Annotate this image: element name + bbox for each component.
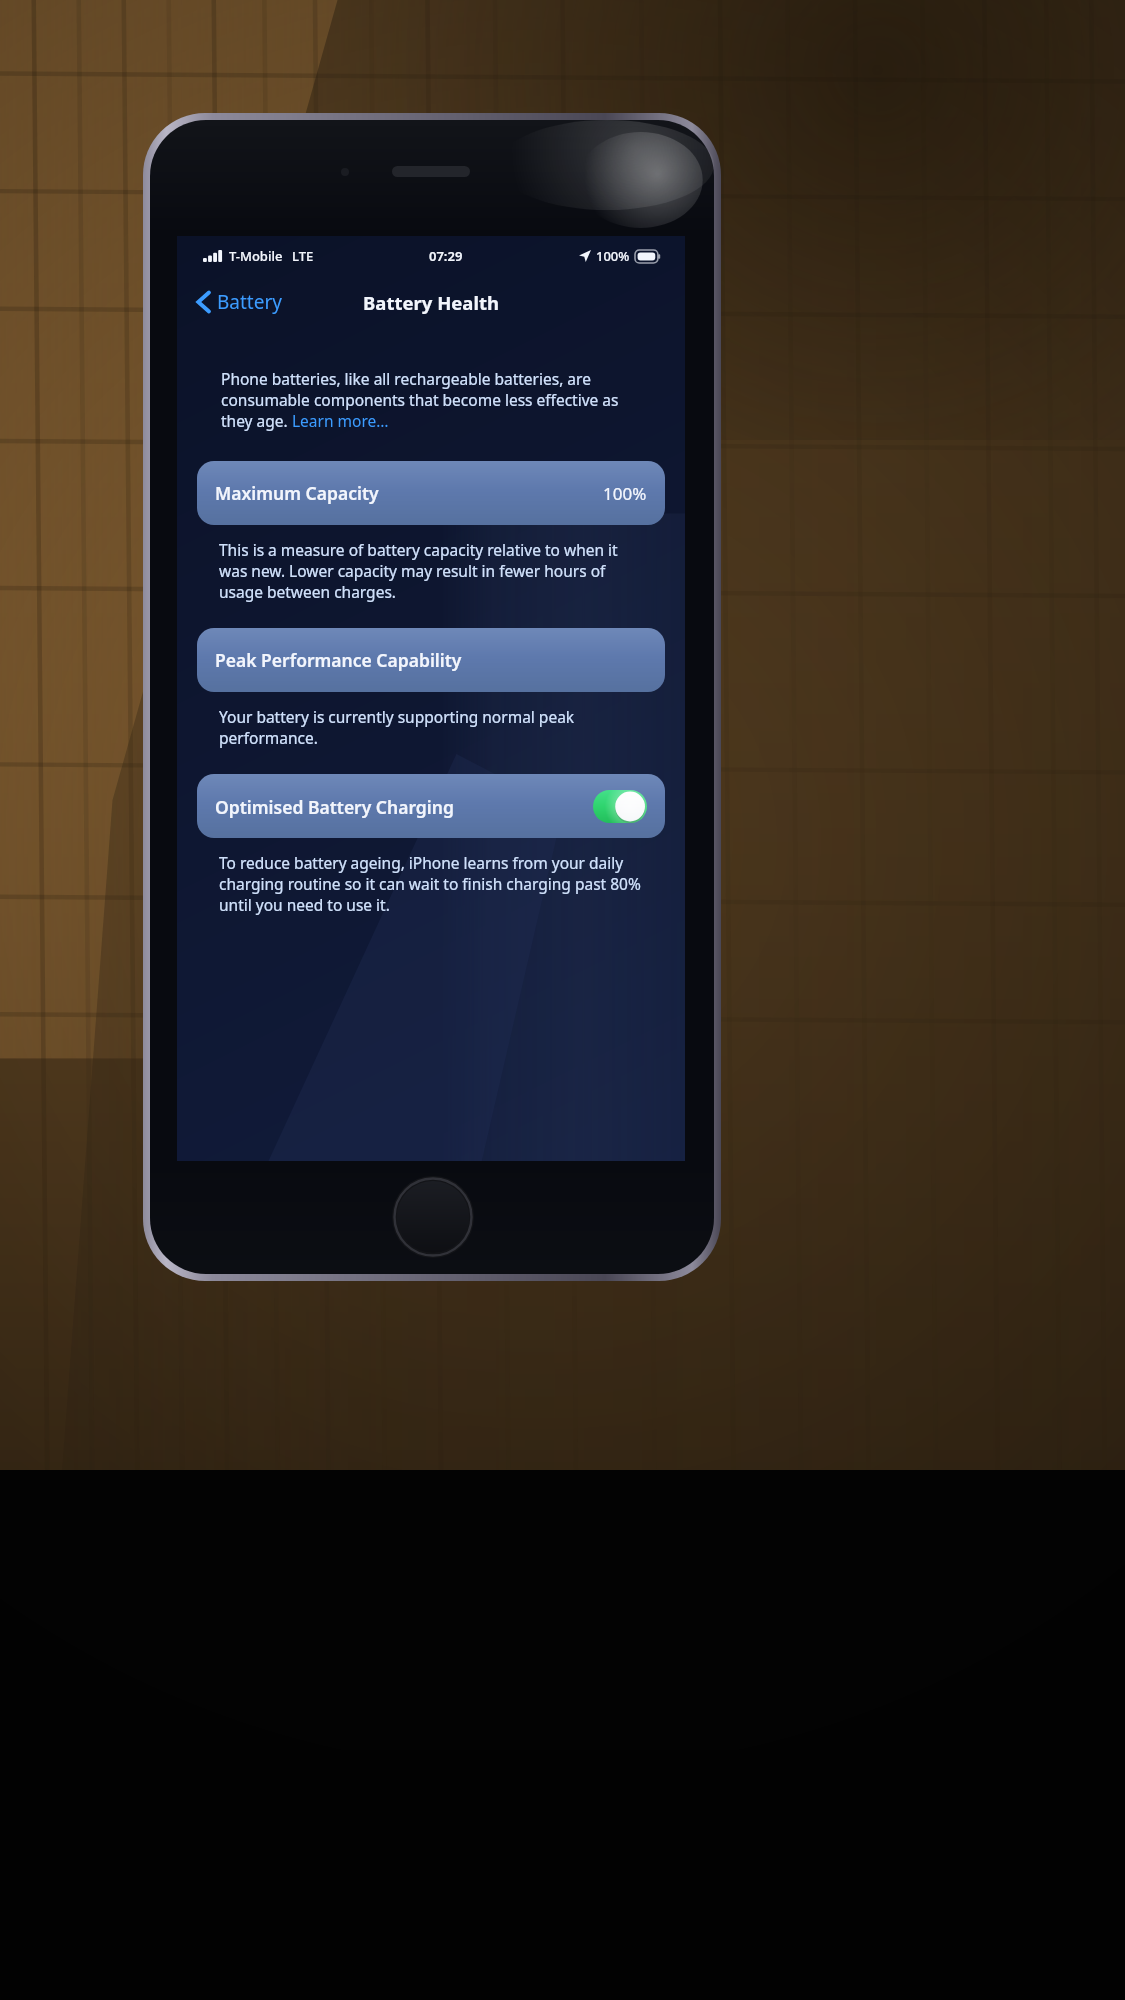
staticText: Battery Health — [363, 290, 499, 315]
staticText: Your battery is currently supporting nor… — [219, 706, 575, 727]
staticText: 100% — [603, 482, 647, 505]
button[interactable]: Learn more… — [292, 410, 389, 431]
button[interactable]: Battery — [191, 285, 288, 319]
staticText: was new. Lower capacity may result in fe… — [219, 560, 606, 581]
staticText: T-Mobile — [229, 247, 283, 265]
button[interactable]: Peak Performance Capability — [197, 628, 665, 692]
button[interactable]: Optimised Battery Charging — [197, 774, 665, 838]
staticText: Battery — [217, 289, 282, 315]
staticText: Learn more… — [292, 410, 389, 431]
staticText: This is a measure of battery capacity re… — [219, 539, 618, 560]
button[interactable]: Maximum Capacity — [197, 461, 665, 525]
staticText: LTE — [292, 247, 314, 265]
staticText: Maximum Capacity — [215, 481, 603, 505]
staticText: consumable components that become less e… — [221, 389, 619, 410]
staticText: Optimised Battery Charging — [215, 795, 593, 819]
staticText: To reduce battery ageing, iPhone learns … — [219, 852, 624, 873]
staticText: performance. — [219, 727, 318, 748]
button[interactable]: Optimised Battery Charging, on — [593, 790, 647, 823]
staticText: usage between charges. — [219, 581, 396, 602]
staticText: they age. — [221, 410, 292, 431]
staticText: charging routine so it can wait to finis… — [219, 873, 641, 894]
staticText: 100% — [596, 247, 630, 265]
staticText: until you need to use it. — [219, 894, 390, 915]
staticText: 07:29 — [429, 247, 463, 265]
staticText: Phone batteries, like all rechargeable b… — [221, 368, 591, 389]
staticText: Peak Performance Capability — [215, 648, 647, 672]
